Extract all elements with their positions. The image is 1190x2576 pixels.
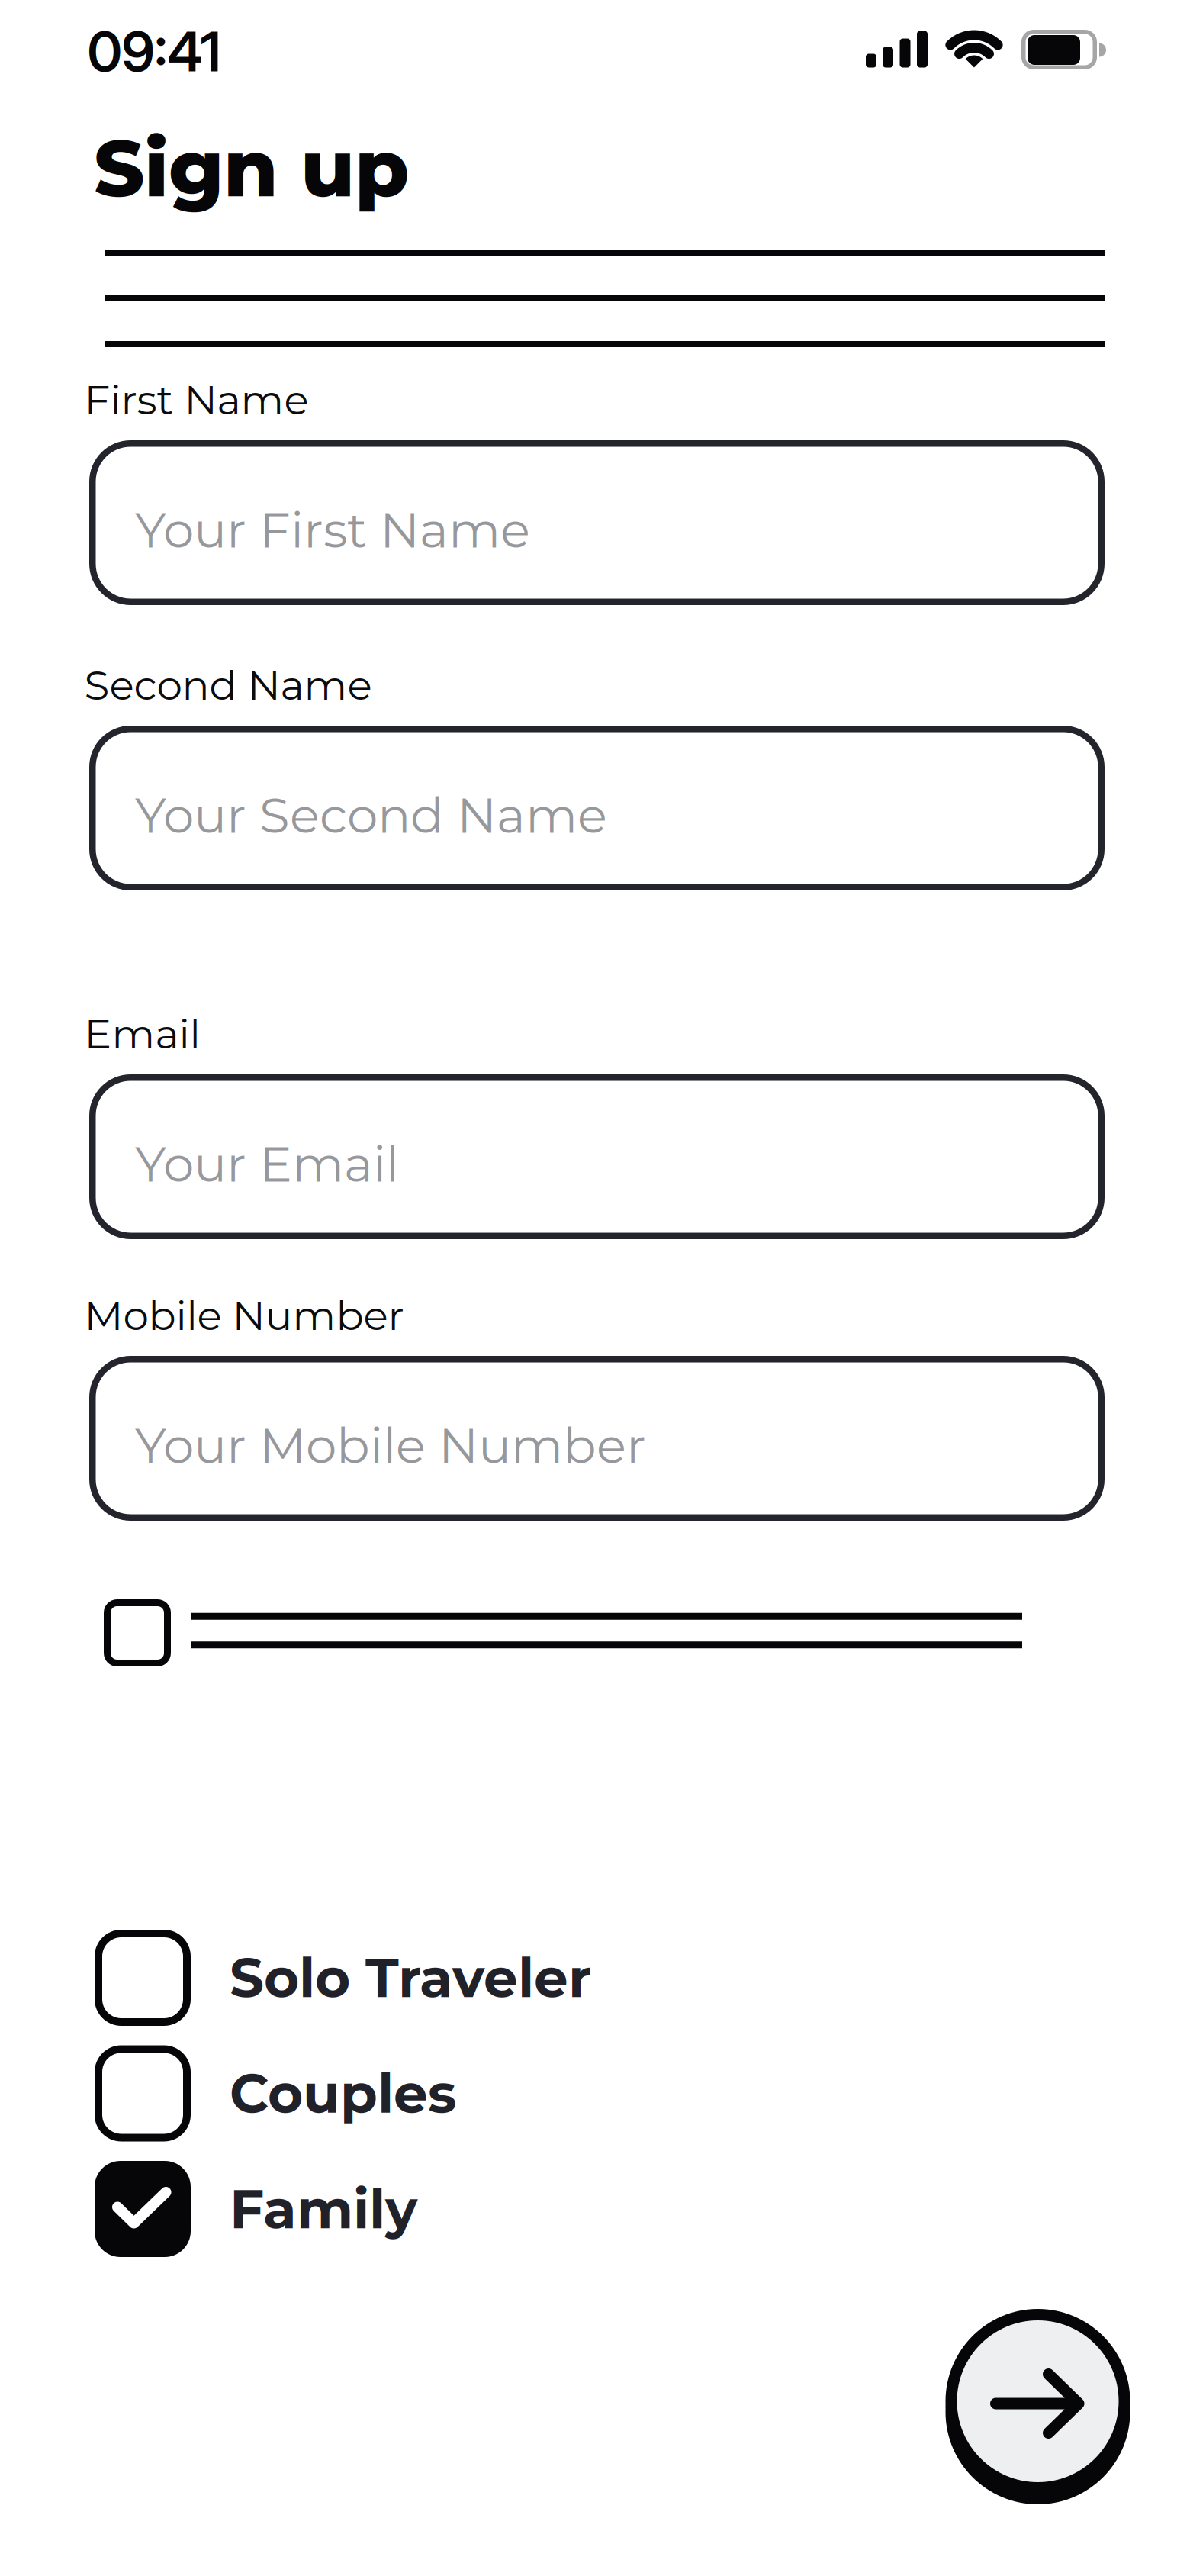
button[interactable]: Your Email xyxy=(89,1074,1105,1239)
staticText: Family xyxy=(230,2176,417,2242)
button[interactable]: Your Mobile Number xyxy=(89,1356,1105,1521)
staticText: Solo Traveler xyxy=(230,1945,591,2011)
staticText: Your First Name xyxy=(135,500,530,560)
staticText: Your Second Name xyxy=(135,785,607,845)
staticText: Your Email xyxy=(135,1134,399,1194)
staticText: Second Name xyxy=(84,660,372,710)
staticText: Mobile Number xyxy=(84,1291,404,1340)
staticText: Email xyxy=(84,1009,200,1059)
button[interactable]: Agree to terms xyxy=(104,1599,1022,1666)
staticText: Couples xyxy=(230,2060,457,2126)
staticText: Sign up xyxy=(94,120,409,216)
staticText: Your Mobile Number xyxy=(135,1416,646,1475)
staticText: 09:41 xyxy=(87,19,221,84)
button[interactable]: Solo Traveler xyxy=(95,1930,591,2026)
staticText: First Name xyxy=(84,375,309,425)
button[interactable]: Continue xyxy=(946,2309,1130,2504)
button[interactable]: Your First Name xyxy=(89,440,1105,605)
button[interactable]: Your Second Name xyxy=(89,726,1105,890)
button[interactable]: Couples xyxy=(95,2045,457,2141)
button[interactable]: Family xyxy=(95,2161,417,2257)
